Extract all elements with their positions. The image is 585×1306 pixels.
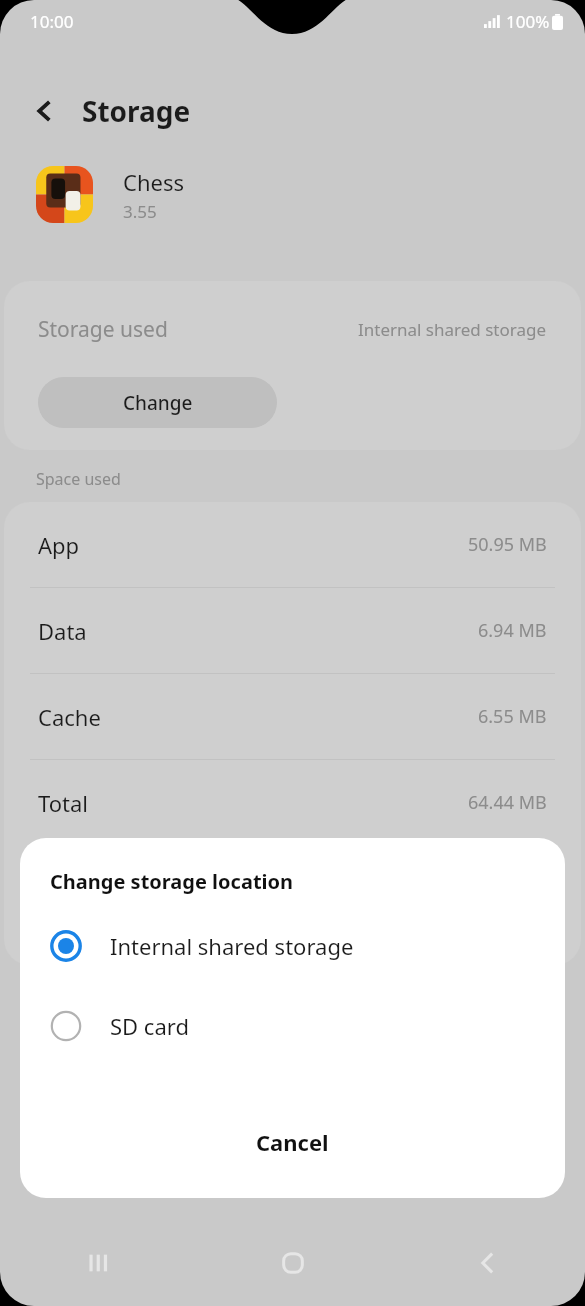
staticText: Cancel xyxy=(256,1127,329,1157)
button[interactable]: Cache xyxy=(4,674,581,759)
staticText: Total xyxy=(38,788,88,818)
staticText: 10:00 xyxy=(30,10,74,33)
staticText: 100% xyxy=(506,10,550,33)
button[interactable]: Internal shared storage xyxy=(20,919,565,973)
staticText: Chess xyxy=(123,167,184,197)
staticText: App xyxy=(38,530,80,560)
button[interactable]: Total xyxy=(4,760,581,845)
button[interactable]: Clear cache xyxy=(292,845,581,965)
button[interactable]: Clear data xyxy=(4,845,292,965)
staticText: Change xyxy=(123,390,193,416)
button[interactable]: App xyxy=(4,502,581,587)
staticText: 64.44 MB xyxy=(468,790,547,815)
button[interactable]: SD card xyxy=(20,999,565,1053)
staticText: Storage used xyxy=(38,315,168,344)
button[interactable]: Back xyxy=(20,86,70,136)
staticText: 50.95 MB xyxy=(468,532,547,557)
button[interactable]: Back xyxy=(390,1220,585,1306)
staticText: Internal shared storage xyxy=(110,931,354,961)
staticText: Storage xyxy=(82,92,191,130)
button[interactable]: Recents xyxy=(0,1220,195,1306)
button[interactable]: Storage used xyxy=(4,281,581,377)
staticText: Space used xyxy=(36,468,121,490)
staticText: Internal shared storage xyxy=(358,318,547,341)
button[interactable]: Cancel xyxy=(20,1104,565,1180)
staticText: Data xyxy=(38,616,87,646)
button[interactable]: Data xyxy=(4,588,581,673)
staticText: Change storage location xyxy=(50,868,294,895)
button[interactable]: Change xyxy=(38,377,277,428)
staticText: 6.94 MB xyxy=(478,618,547,643)
staticText: Clear data xyxy=(102,892,195,918)
staticText: 3.55 xyxy=(123,200,157,223)
staticText: 6.55 MB xyxy=(478,704,547,729)
staticText: Cache xyxy=(38,702,101,732)
staticText: SD card xyxy=(110,1011,189,1041)
